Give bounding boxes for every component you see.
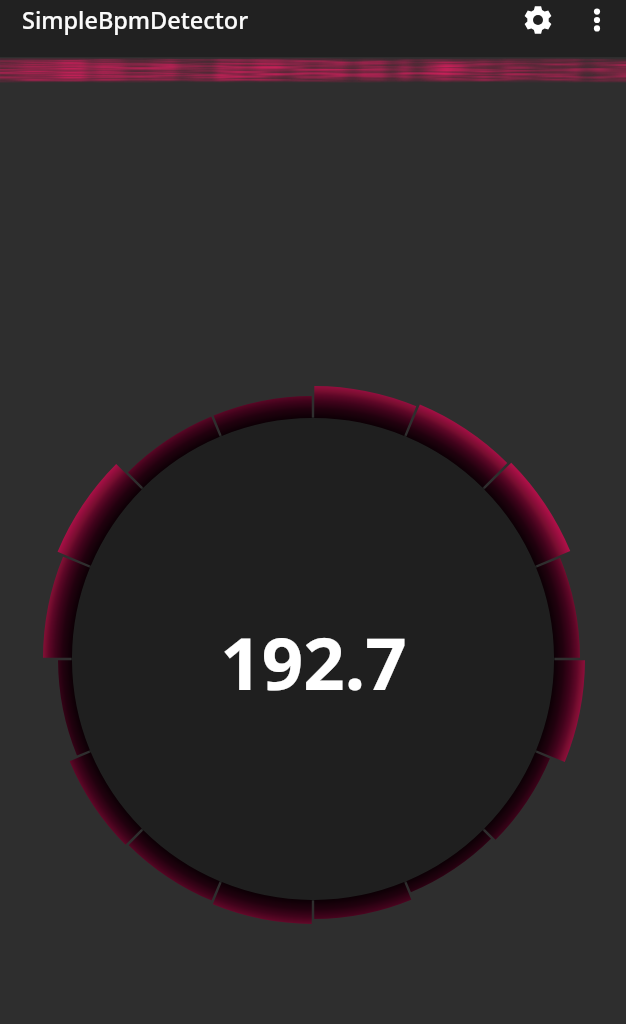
staticText: SimpleBpmDetector <box>22 4 249 36</box>
button[interactable]: Settings <box>514 0 562 40</box>
staticText: 192.7 <box>220 612 407 711</box>
button[interactable]: More options <box>577 0 617 40</box>
